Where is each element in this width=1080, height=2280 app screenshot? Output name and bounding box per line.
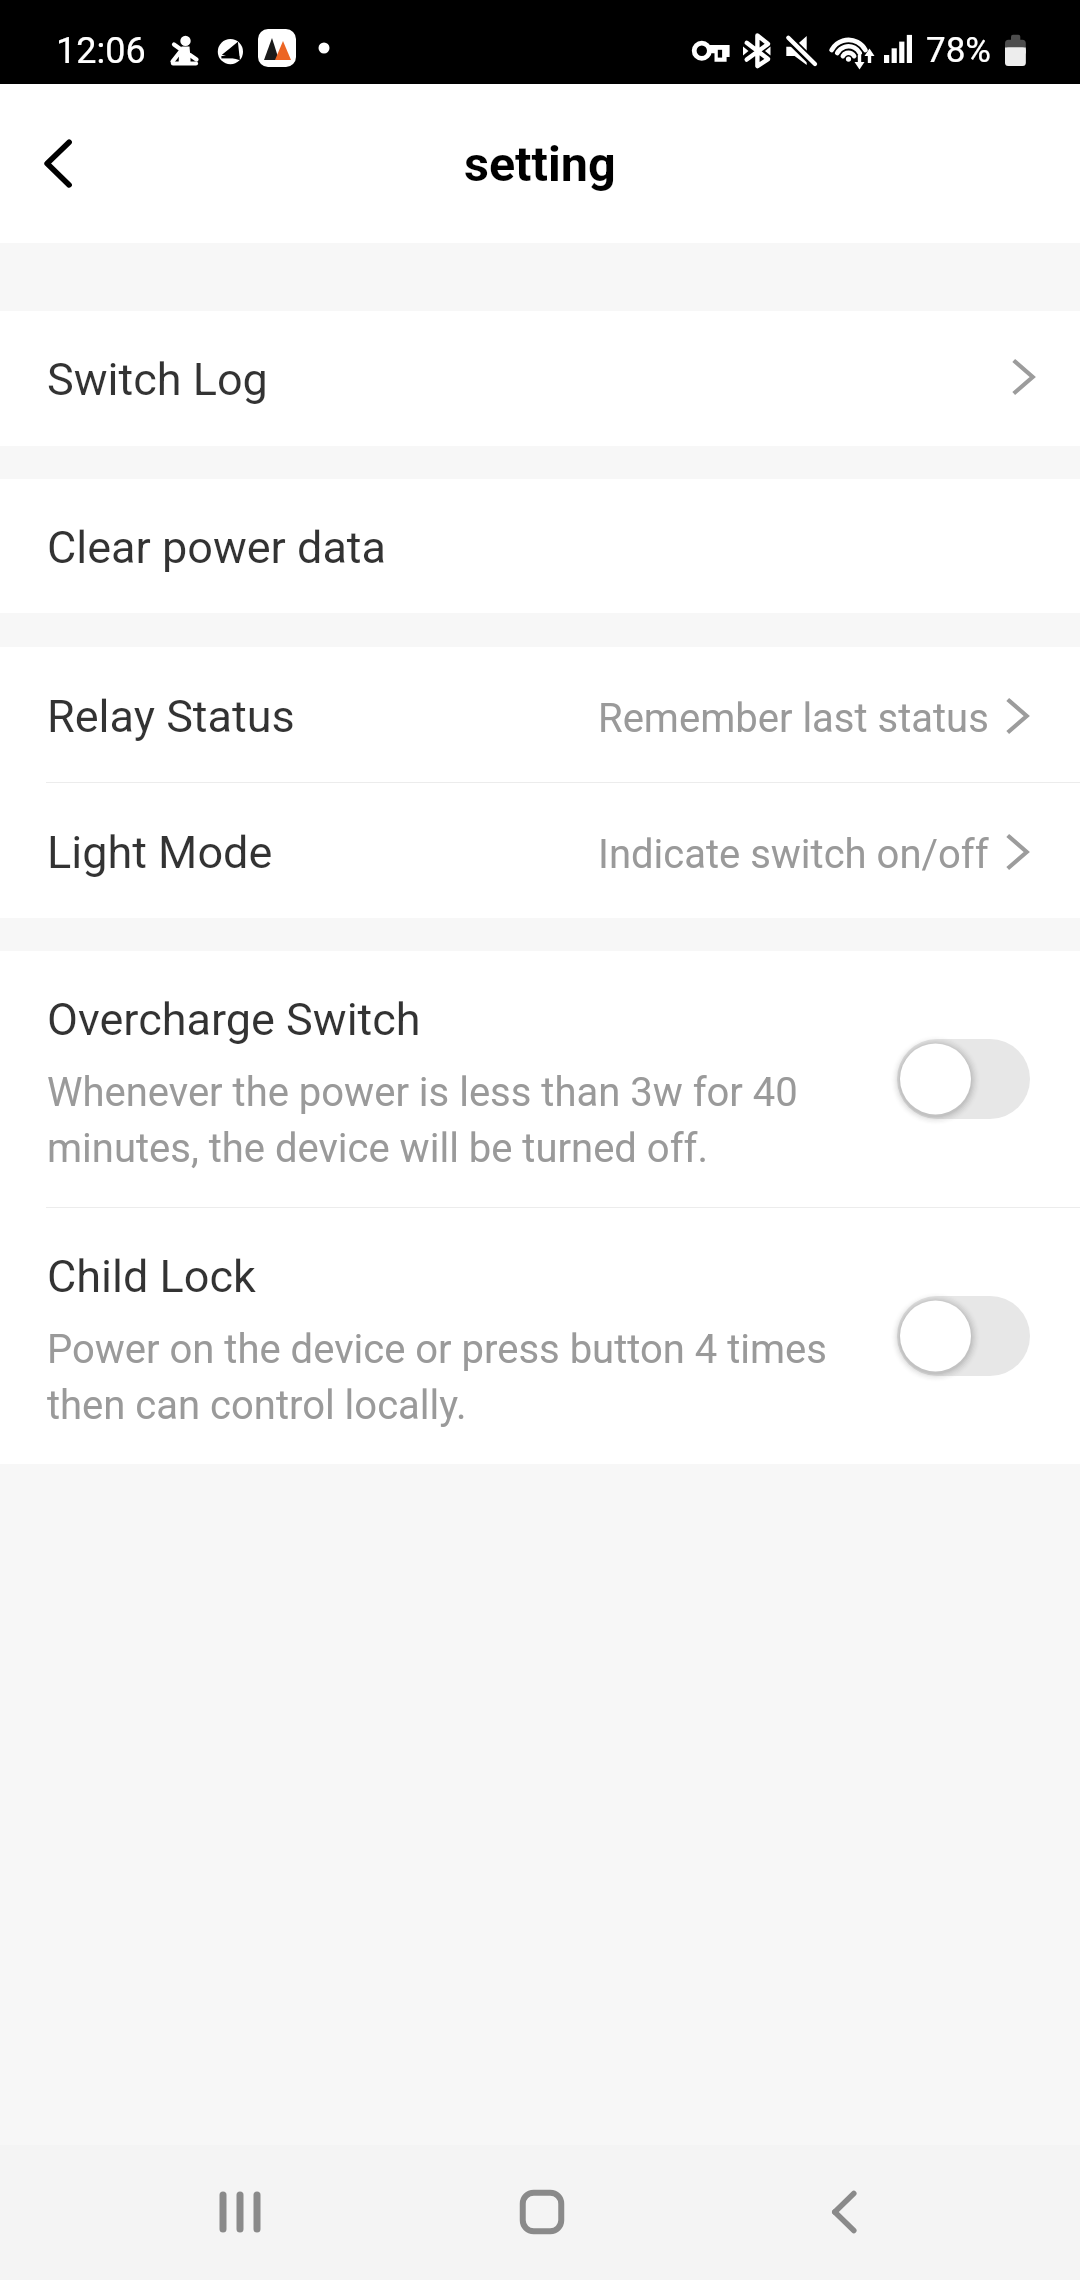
staticText: Remember last status — [598, 695, 989, 742]
button[interactable]: Recents — [150, 2145, 330, 2280]
staticText: Whenever the power is less than 3w for 4… — [47, 1062, 860, 1174]
staticText: 12:06 — [56, 30, 146, 72]
staticText: Switch Log — [47, 354, 268, 406]
staticText: Clear power data — [47, 522, 387, 574]
button[interactable]: Clear power data — [0, 479, 1080, 613]
button[interactable]: Back — [754, 2145, 934, 2280]
button[interactable]: Light Mode — [0, 783, 1080, 918]
staticText: 78% — [926, 30, 991, 71]
staticText: Child Lock — [47, 1251, 256, 1303]
button[interactable]: Toggle — [891, 1033, 1036, 1125]
staticText: Relay Status — [47, 691, 295, 743]
button[interactable]: Switch Log — [0, 311, 1080, 446]
staticText: Indicate switch on/off — [598, 831, 989, 878]
button[interactable]: Toggle — [891, 1290, 1036, 1382]
button[interactable]: Relay Status — [0, 647, 1080, 782]
staticText: Light Mode — [47, 827, 273, 879]
button[interactable]: Child Lock — [0, 1208, 1080, 1464]
button[interactable]: Home — [452, 2145, 632, 2280]
staticText: setting — [464, 136, 616, 193]
staticText: Power on the device or press button 4 ti… — [47, 1319, 860, 1431]
button[interactable]: Overcharge Switch — [0, 951, 1080, 1207]
staticText: Overcharge Switch — [47, 994, 421, 1046]
button[interactable]: Back — [0, 107, 116, 220]
